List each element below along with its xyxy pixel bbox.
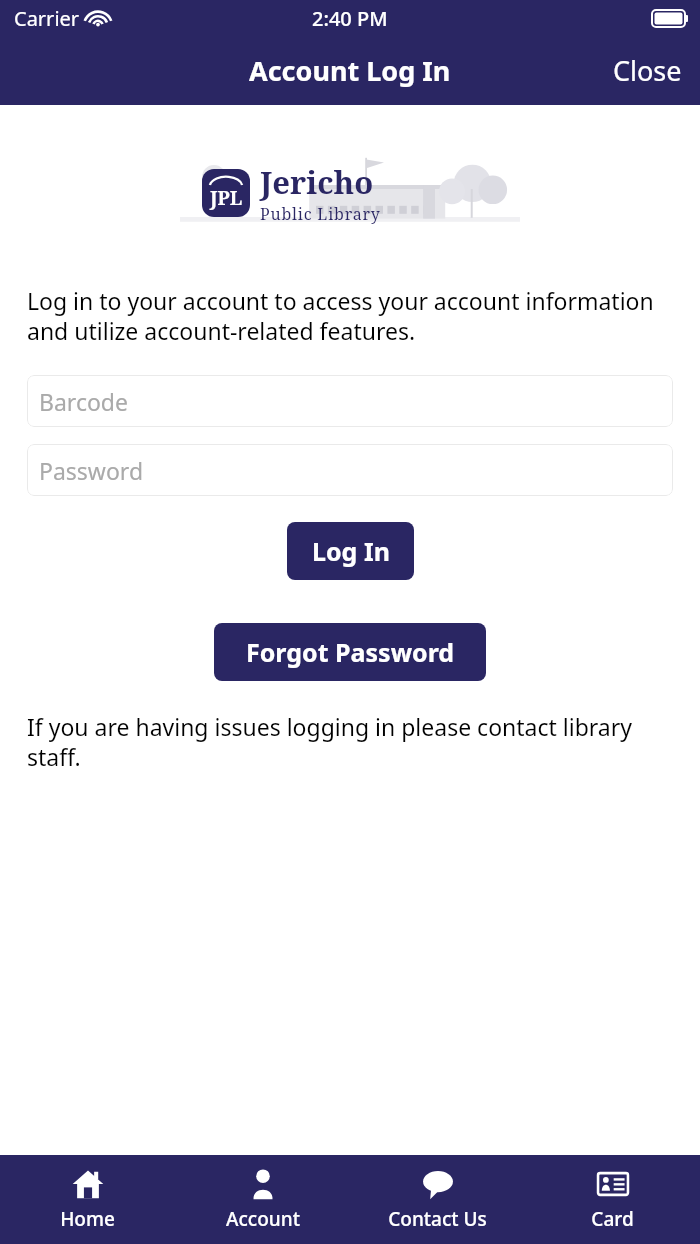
staticText: Card <box>591 1206 634 1232</box>
button[interactable]: Password <box>27 444 673 496</box>
staticText: Barcode <box>39 386 128 417</box>
staticText: Home <box>60 1206 115 1232</box>
staticText: Public Library <box>260 203 381 225</box>
staticText: Contact Us <box>388 1206 487 1232</box>
button[interactable]: Card <box>525 1155 700 1244</box>
button[interactable]: Forgot Password <box>214 623 486 681</box>
button[interactable]: Contact Us <box>350 1155 525 1244</box>
button[interactable]: Log In <box>287 522 414 580</box>
staticText: If you are having issues logging in plea… <box>27 711 673 773</box>
button[interactable]: Account <box>175 1155 350 1244</box>
staticText: JPL <box>210 185 243 211</box>
staticText: 2:40 PM <box>312 5 388 32</box>
staticText: Account <box>226 1206 300 1232</box>
staticText: Log in to your account to access your ac… <box>27 285 673 347</box>
staticText: Forgot Password <box>246 635 455 669</box>
button[interactable]: Home <box>0 1155 175 1244</box>
staticText: Log In <box>312 534 390 568</box>
staticText: Password <box>39 455 144 486</box>
staticText: Close <box>613 52 682 89</box>
staticText: Carrier <box>14 5 80 32</box>
button[interactable]: Close <box>595 42 700 99</box>
button[interactable]: Barcode <box>27 375 673 427</box>
staticText: Account Log In <box>249 52 451 89</box>
staticText: Jericho <box>260 161 374 203</box>
